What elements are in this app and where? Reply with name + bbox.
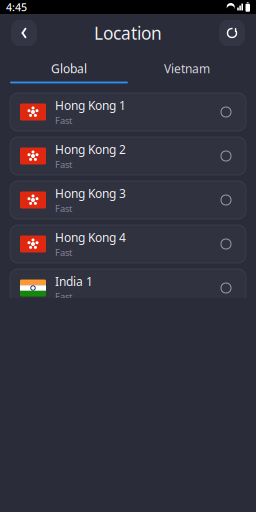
staticText: Global (51, 61, 87, 76)
button[interactable]: Back (11, 20, 37, 46)
staticText: Fast (55, 290, 72, 303)
button[interactable]: Hong Kong 4 (10, 225, 246, 263)
staticText: Hong Kong 3 (55, 185, 126, 201)
button[interactable]: Vietnam (128, 61, 246, 83)
staticText: Fast (55, 114, 72, 127)
button[interactable]: Hong Kong 2 (10, 137, 246, 175)
button[interactable]: Global (10, 61, 128, 83)
staticText: India 1 (55, 273, 93, 289)
staticText: Fast (55, 246, 72, 259)
staticText: Vietnam (164, 61, 210, 76)
staticText: 4:45 (6, 0, 27, 14)
staticText: Location (94, 21, 162, 44)
staticText: Hong Kong 2 (55, 141, 126, 157)
button[interactable]: India 1 (10, 269, 246, 307)
button[interactable]: Hong Kong 1 (10, 93, 246, 131)
staticText: Fast (55, 158, 72, 171)
staticText: Hong Kong 4 (55, 229, 126, 245)
staticText: Hong Kong 1 (55, 97, 126, 113)
button[interactable]: Hong Kong 3 (10, 181, 246, 219)
button[interactable]: Refresh (219, 20, 245, 46)
staticText: Fast (55, 202, 72, 215)
